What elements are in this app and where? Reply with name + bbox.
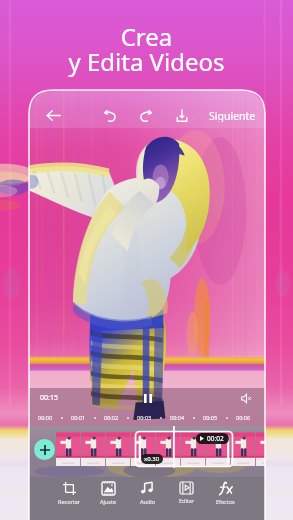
staticText: 00:00 bbox=[38, 414, 53, 421]
staticText: Crea y Edita Videos bbox=[0, 20, 293, 78]
button[interactable]: Pause bbox=[140, 390, 156, 406]
button[interactable]: Download bbox=[169, 103, 195, 128]
button[interactable]: Ajuste bbox=[89, 477, 128, 520]
staticText: x0.30 bbox=[144, 455, 160, 463]
staticText: Audio bbox=[140, 498, 156, 505]
staticText: 00:02 bbox=[207, 434, 224, 443]
button[interactable]: Efectos bbox=[206, 477, 245, 520]
button[interactable]: Mute bbox=[238, 390, 254, 406]
button[interactable]: Redo bbox=[133, 103, 159, 128]
button[interactable]: Back bbox=[40, 103, 66, 128]
staticText: 00:01 bbox=[71, 414, 86, 421]
button[interactable]: Audio bbox=[128, 477, 167, 520]
staticText: Recortar bbox=[58, 498, 81, 505]
staticText: Editar bbox=[179, 497, 195, 504]
button[interactable]: Undo bbox=[97, 103, 123, 128]
staticText: 00:05 bbox=[203, 414, 218, 421]
staticText: 00:04 bbox=[170, 414, 185, 421]
button[interactable]: Recortar bbox=[50, 477, 89, 520]
staticText: 00:02 bbox=[104, 414, 119, 421]
staticText: Efectos bbox=[216, 498, 235, 505]
staticText: 00:15 bbox=[40, 393, 58, 403]
staticText: Siguiente bbox=[209, 109, 256, 122]
button[interactable]: Siguiente bbox=[202, 103, 263, 128]
staticText: 00:03 bbox=[137, 414, 152, 421]
staticText: Ajuste bbox=[100, 498, 117, 505]
button[interactable]: Editar bbox=[167, 477, 206, 520]
button[interactable]: Add clip bbox=[34, 439, 55, 460]
staticText: 00:06 bbox=[236, 414, 251, 421]
